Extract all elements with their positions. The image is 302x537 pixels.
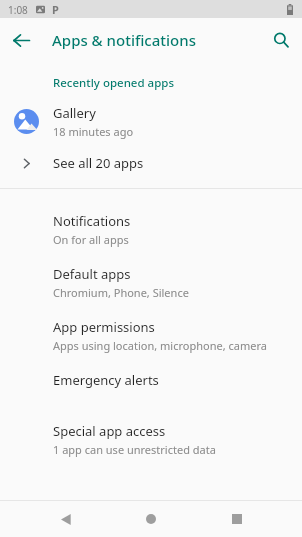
button[interactable]: Navigate up — [7, 26, 35, 54]
button[interactable]: Emergency alerts — [0, 362, 302, 413]
button[interactable]: App permissions — [0, 309, 302, 362]
button[interactable]: Default apps — [0, 256, 302, 309]
button[interactable]: Recent apps — [217, 501, 257, 537]
staticText: Recently opened apps — [53, 75, 175, 91]
staticText: Special app access — [53, 422, 166, 440]
staticText: Default apps — [53, 265, 131, 283]
staticText: 1 app can use unrestricted data — [53, 442, 216, 457]
staticText: 18 minutes ago — [53, 124, 134, 139]
button[interactable]: Search — [267, 26, 295, 54]
staticText: Chromium, Phone, Silence — [53, 285, 189, 300]
button[interactable]: Notifications — [0, 203, 302, 256]
button[interactable]: Home — [131, 501, 171, 537]
staticText: Apps & notifications — [52, 30, 196, 50]
staticText: Gallery — [53, 104, 96, 122]
staticText: P — [52, 2, 59, 17]
staticText: Apps using location, microphone, camera — [53, 338, 267, 353]
button[interactable]: Gallery — [0, 97, 302, 145]
staticText: App permissions — [53, 318, 155, 336]
button[interactable]: Special app access — [0, 413, 302, 466]
staticText: Notifications — [53, 212, 131, 230]
staticText: Emergency alerts — [53, 371, 159, 389]
staticText: See all 20 apps — [53, 154, 144, 172]
staticText: 1:08 — [8, 3, 28, 17]
button[interactable]: Back — [46, 501, 86, 537]
staticText: On for all apps — [53, 232, 129, 247]
button[interactable]: See all 20 apps — [0, 145, 302, 181]
